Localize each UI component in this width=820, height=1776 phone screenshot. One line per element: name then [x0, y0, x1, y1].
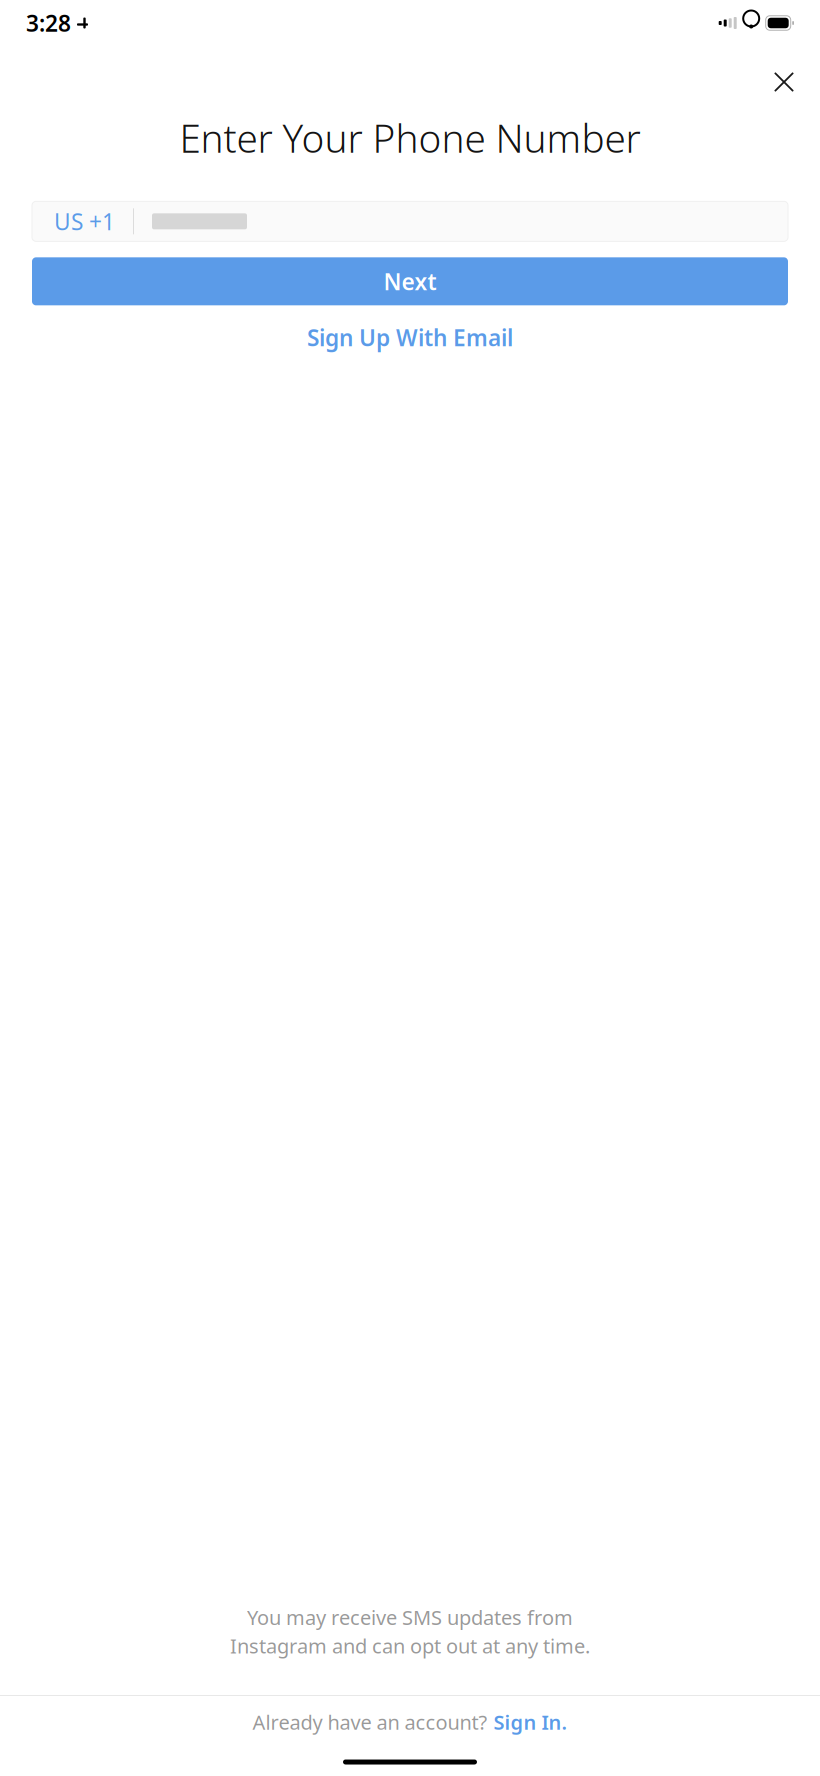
staticText: You may receive SMS updates from: [247, 1604, 573, 1630]
button[interactable]: Sign Up With Email: [32, 315, 788, 359]
staticText: Sign In.: [493, 1709, 567, 1735]
button[interactable]: Close: [762, 60, 806, 104]
staticText: Already have an account?: [252, 1709, 487, 1735]
staticText: Enter Your Phone Number: [179, 112, 640, 163]
staticText: Instagram and can opt out at any time.: [230, 1632, 590, 1659]
button[interactable]: Already have an account?: [0, 1696, 820, 1748]
staticText: US +1: [54, 206, 115, 236]
staticText: 3:28: [26, 8, 71, 38]
staticText: Next: [383, 266, 436, 296]
staticText: Sign Up With Email: [307, 322, 513, 352]
button[interactable]: US +1: [32, 201, 788, 241]
button[interactable]: Next: [32, 257, 788, 305]
